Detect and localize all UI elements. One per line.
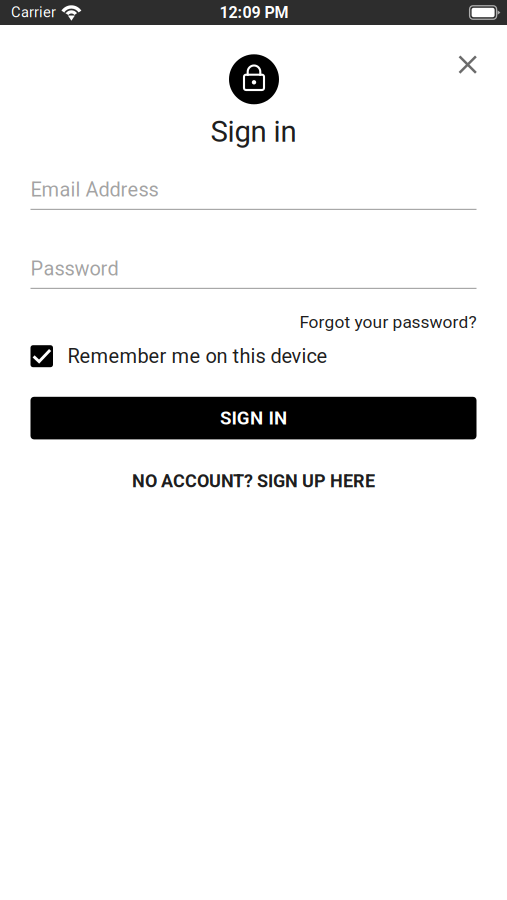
staticText: 12:09 PM xyxy=(219,3,288,22)
button[interactable]: Forgot your password? xyxy=(30,309,476,335)
staticText: Sign in xyxy=(210,114,296,149)
textField[interactable]: Email Address xyxy=(30,178,476,210)
button[interactable]: NO ACCOUNT? SIGN UP HERE xyxy=(30,466,476,496)
staticText: Password xyxy=(30,257,118,280)
button[interactable]: Close xyxy=(446,43,490,87)
button[interactable]: Remember me on this device xyxy=(30,343,476,369)
staticText: NO ACCOUNT? SIGN UP HERE xyxy=(132,471,375,492)
staticText: SIGN IN xyxy=(220,407,287,429)
staticText: Remember me on this device xyxy=(67,344,327,368)
staticText: Carrier xyxy=(11,4,56,21)
staticText: Forgot your password? xyxy=(299,312,476,332)
staticText: Email Address xyxy=(30,178,158,201)
button[interactable]: SIGN IN xyxy=(30,397,476,439)
secureTextField[interactable]: Password xyxy=(30,257,476,289)
